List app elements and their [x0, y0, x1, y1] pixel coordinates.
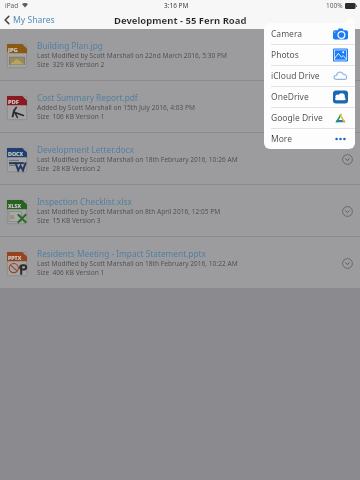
staticText: PPTX: [8, 254, 22, 261]
button[interactable]: Show file actions: [337, 97, 357, 117]
staticText: Residents Meeting - Impact Statement.ppt…: [37, 248, 206, 259]
button[interactable]: iCloud Drive: [264, 65, 355, 86]
button[interactable]: Show file actions: [337, 45, 357, 65]
staticText: XLSX: [8, 202, 21, 209]
button[interactable]: DOCX: [0, 133, 360, 184]
button[interactable]: Show file actions: [337, 201, 357, 221]
staticText: iPad: [5, 1, 19, 10]
button[interactable]: Camera: [264, 23, 355, 44]
staticText: Size 406 KB Version 1: [37, 268, 105, 277]
staticText: Added by Scott Marshall on 15th July 201…: [37, 103, 195, 112]
staticText: My Shares: [13, 14, 55, 26]
staticText: Development - 55 Fern Road: [114, 14, 247, 27]
button[interactable]: PPTX: [0, 237, 360, 288]
staticText: More: [271, 133, 292, 145]
staticText: Last Modified by Scott Marshall on 8th A…: [37, 207, 221, 216]
staticText: OneDrive: [271, 91, 309, 103]
staticText: JPG: [8, 46, 18, 54]
button[interactable]: Photos: [264, 44, 355, 65]
staticText: Cost Summary Report.pdf: [37, 92, 138, 103]
button[interactable]: JPG: [0, 29, 360, 80]
staticText: Size 106 KB Version 1: [37, 112, 105, 121]
staticText: Google Drive: [271, 112, 323, 124]
button[interactable]: OneDrive: [264, 86, 355, 107]
staticText: Development Letter.docx: [37, 144, 134, 155]
staticText: 100%: [326, 1, 343, 10]
button[interactable]: Show file actions: [337, 149, 357, 169]
staticText: iCloud Drive: [271, 70, 320, 82]
staticText: Size 28 KB Version 2: [37, 164, 101, 173]
staticText: Last Modified by Scott Marshall on 18th …: [37, 155, 238, 164]
button[interactable]: Show file actions: [337, 253, 357, 273]
staticText: Last Modified by Scott Marshall on 18th …: [37, 259, 238, 268]
staticText: Inspection Checklist.xlsx: [37, 196, 132, 207]
staticText: DOCX: [8, 150, 24, 157]
staticText: Building Plan.jpg: [37, 40, 103, 51]
staticText: Size 15 KB Version 3: [37, 216, 101, 225]
staticText: PDF: [8, 98, 20, 106]
button[interactable]: XLSX: [0, 185, 360, 236]
staticText: Size 329 KB Version 2: [37, 60, 105, 69]
button[interactable]: My Shares: [4, 11, 55, 29]
staticText: Camera: [271, 28, 302, 40]
staticText: Photos: [271, 49, 299, 61]
staticText: 3:16 PM: [164, 1, 189, 10]
button[interactable]: Google Drive: [264, 107, 355, 128]
staticText: Last Modified by Scott Marshall on 22nd …: [37, 51, 228, 60]
button[interactable]: More: [264, 128, 355, 149]
button[interactable]: PDF: [0, 81, 360, 132]
